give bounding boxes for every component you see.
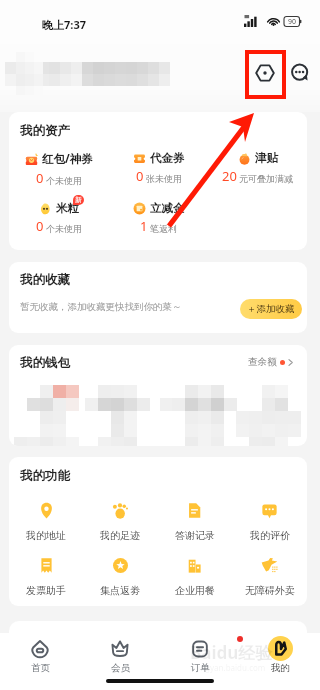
button[interactable]: 红包/神券 xyxy=(9,151,109,187)
button[interactable]: 我的评价 xyxy=(232,502,307,542)
staticText: 晚上7:37 xyxy=(42,17,86,32)
button[interactable]: 我的 xyxy=(254,635,306,683)
staticText: 笔返利 xyxy=(150,223,177,234)
button[interactable]: 会员 xyxy=(94,635,146,683)
staticText: 个未使用 xyxy=(46,175,82,186)
button[interactable]: 发票助手 xyxy=(9,557,83,597)
button[interactable]: 我的足迹 xyxy=(83,502,157,542)
button[interactable]: 设置 xyxy=(250,58,280,88)
staticText: 0 xyxy=(36,217,44,235)
staticText: 0 xyxy=(136,167,144,185)
staticText: 订单 xyxy=(191,662,210,674)
staticText: 我的资产 xyxy=(20,123,70,139)
button[interactable]: 答谢记录 xyxy=(157,502,232,542)
button[interactable]: 集点返劵 xyxy=(83,557,157,597)
staticText: jingyan.baidu.com xyxy=(196,662,266,673)
staticText: 个未使用 xyxy=(46,223,82,234)
staticText: 我的 xyxy=(271,662,290,674)
staticText: 0 xyxy=(36,169,44,187)
staticText: 90 xyxy=(288,17,297,27)
staticText: 无障碍外卖 xyxy=(245,584,295,597)
staticText: 查余额 xyxy=(248,356,277,368)
staticText: 我的功能 xyxy=(20,468,70,484)
staticText: 我的评价 xyxy=(250,529,290,542)
staticText: Baidu经验 xyxy=(190,641,273,664)
button[interactable]: 我的地址 xyxy=(9,502,83,542)
button[interactable]: 立减金 xyxy=(109,201,208,235)
staticText: 集点返劵 xyxy=(100,584,140,597)
staticText: 津贴 xyxy=(255,151,278,165)
staticText: 20 xyxy=(222,167,237,185)
staticText: 红包/神券 xyxy=(42,151,93,167)
staticText: 企业用餐 xyxy=(175,584,215,597)
staticText: 元可叠加满减 xyxy=(239,173,293,184)
staticText: 会员 xyxy=(111,662,130,674)
staticText: 首页 xyxy=(31,662,50,674)
button[interactable]: 首页 xyxy=(14,635,66,683)
staticText: 我的钱包 xyxy=(20,355,70,371)
button[interactable]: 企业用餐 xyxy=(157,557,232,597)
button[interactable]: 代金券 xyxy=(109,151,208,185)
staticText: 发票助手 xyxy=(26,584,66,597)
button[interactable]: 查余额 xyxy=(248,356,293,368)
staticText: 我的足迹 xyxy=(100,529,140,542)
staticText: 代金券 xyxy=(150,151,185,165)
staticText: 答谢记录 xyxy=(175,529,215,542)
staticText: 米粒 xyxy=(56,201,79,215)
button[interactable]: 米粒 xyxy=(9,201,109,235)
staticText: 我的收藏 xyxy=(20,272,70,288)
staticText: 暂无收藏，添加收藏更快找到你的菜～ xyxy=(20,301,182,313)
button[interactable]: 客服消息 xyxy=(285,58,315,88)
button[interactable]: 津贴 xyxy=(208,151,307,185)
staticText: 新 xyxy=(75,196,82,204)
staticText: 我的地址 xyxy=(26,529,66,542)
staticText: 立减金 xyxy=(150,201,185,215)
button[interactable]: 订单 xyxy=(174,635,226,683)
staticText: 张未使用 xyxy=(146,173,182,184)
button[interactable]: ＋添加收藏 xyxy=(240,299,302,319)
staticText: 1 xyxy=(140,217,148,235)
button[interactable]: 无障碍外卖 xyxy=(232,557,307,597)
staticText: ＋添加收藏 xyxy=(247,303,295,315)
